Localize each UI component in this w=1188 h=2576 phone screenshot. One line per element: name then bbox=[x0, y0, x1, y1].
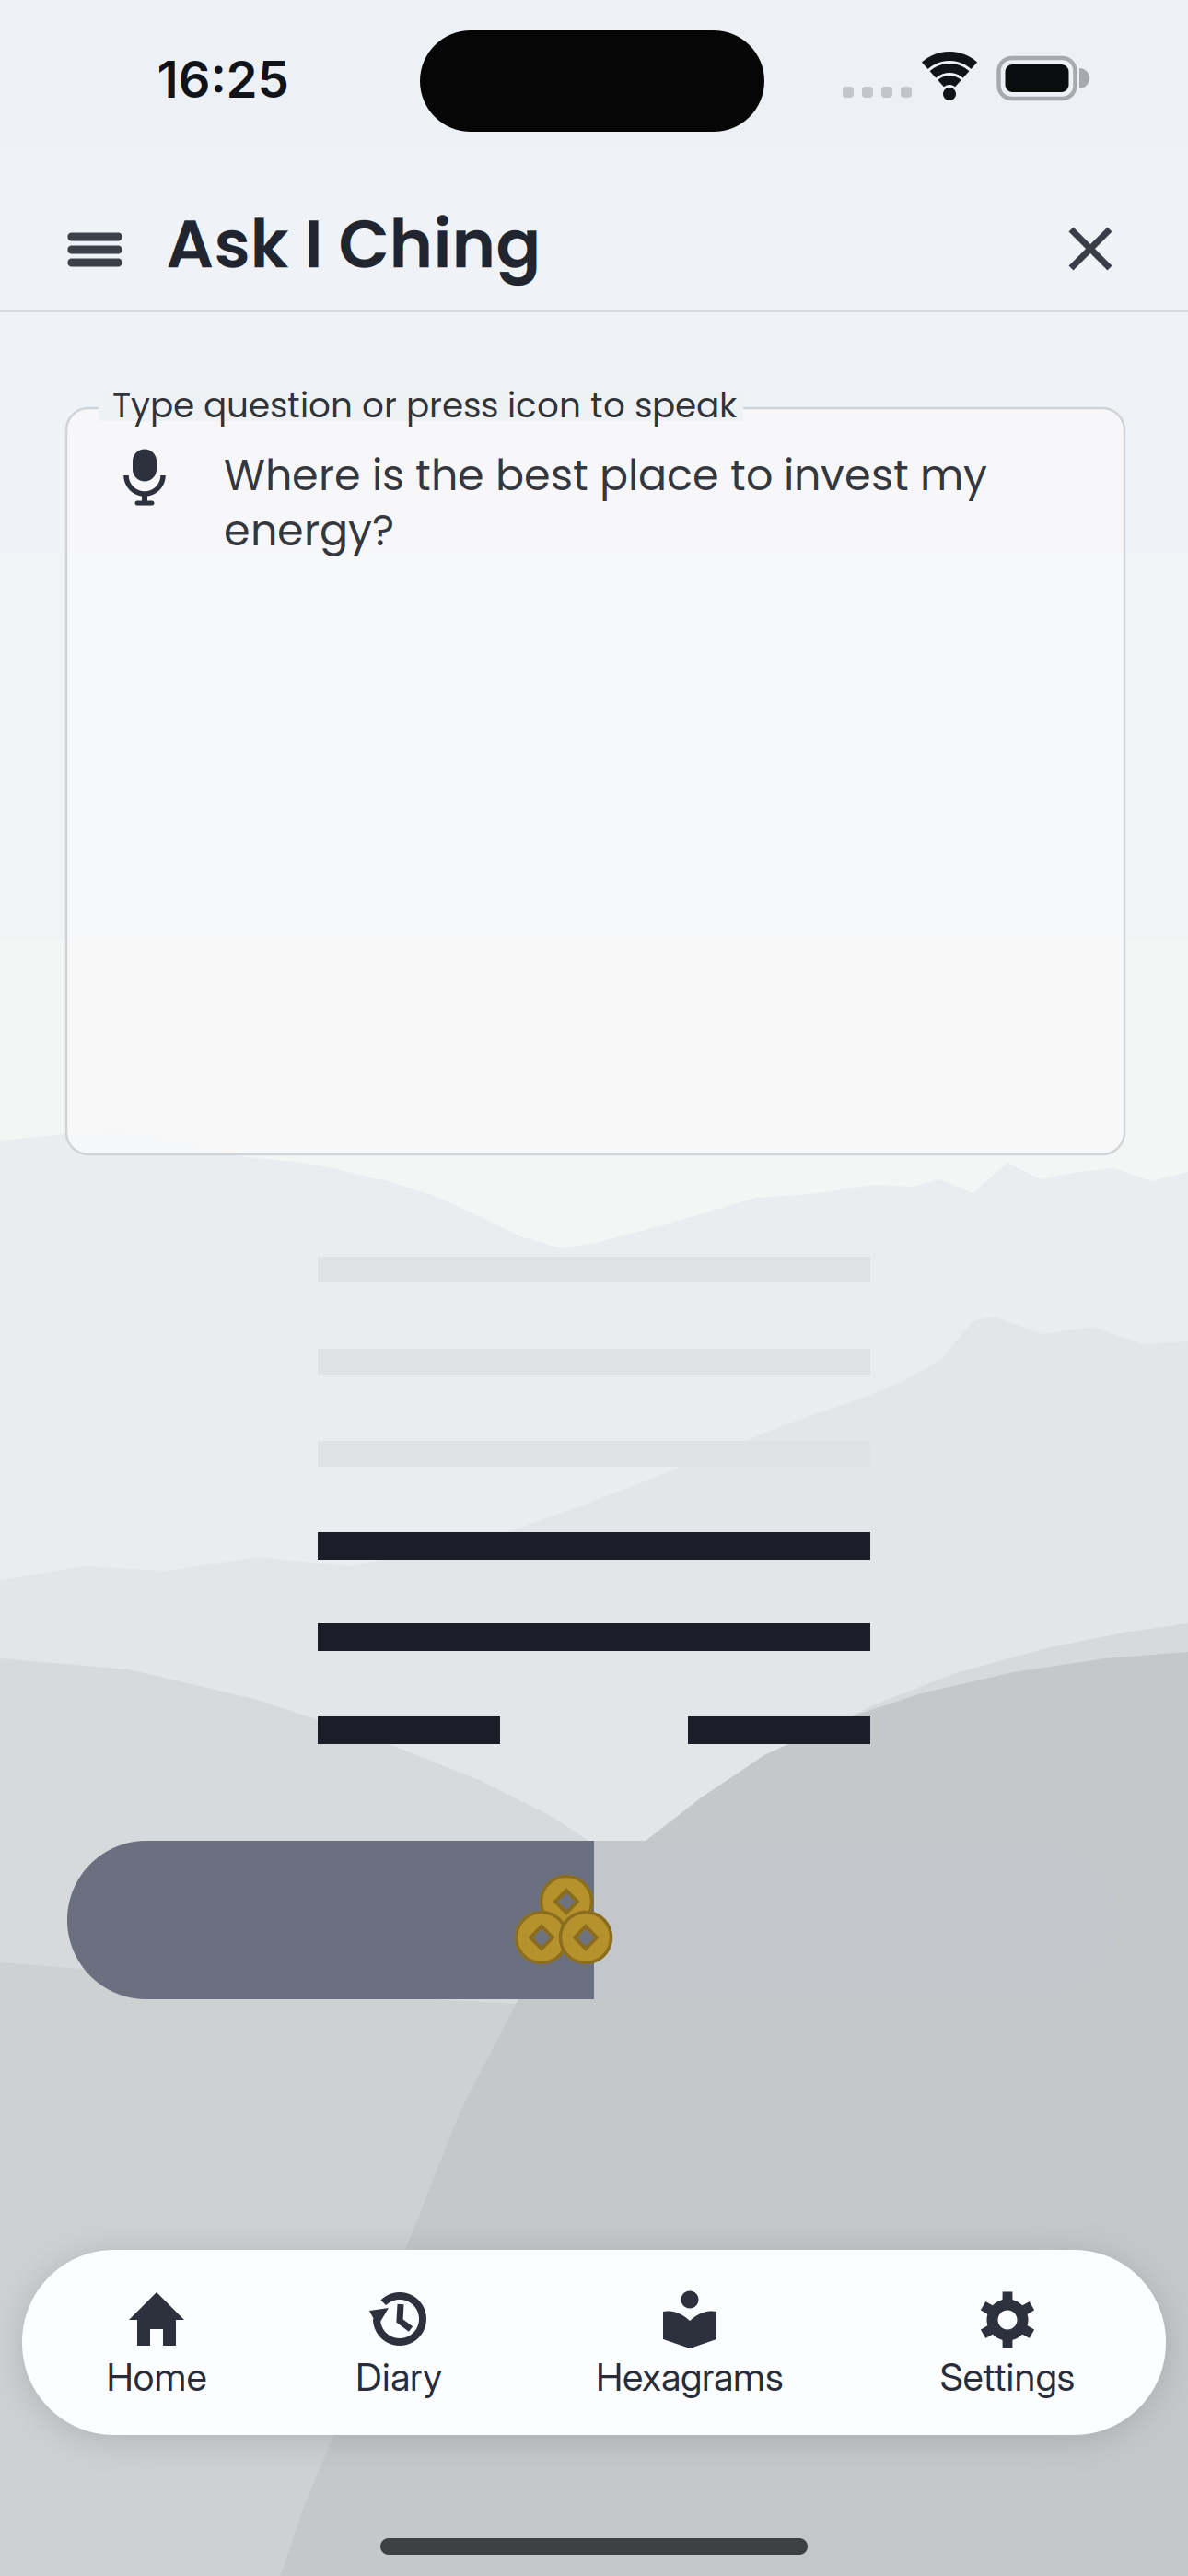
staticText: Hexagrams bbox=[596, 2354, 784, 2400]
staticText: Where is the best place to invest my bbox=[224, 446, 987, 505]
button[interactable]: Close bbox=[1053, 211, 1128, 287]
staticText: Ask I Ching bbox=[166, 198, 541, 291]
staticText: Diary bbox=[355, 2354, 442, 2400]
button[interactable]: Diary bbox=[284, 2267, 514, 2424]
button[interactable]: Hexagrams bbox=[575, 2267, 805, 2424]
button[interactable]: Menu bbox=[53, 217, 136, 282]
button[interactable]: Type question bbox=[66, 408, 1124, 1154]
staticText: energy? bbox=[224, 501, 394, 560]
button[interactable]: Home bbox=[41, 2267, 272, 2424]
button[interactable]: Settings bbox=[892, 2267, 1123, 2424]
staticText: Type question or press icon to speak bbox=[112, 381, 737, 430]
staticText: Settings bbox=[940, 2354, 1075, 2400]
button[interactable]: Speak bbox=[117, 432, 172, 515]
staticText: 16:25 bbox=[157, 49, 289, 110]
staticText: Home bbox=[106, 2354, 207, 2400]
